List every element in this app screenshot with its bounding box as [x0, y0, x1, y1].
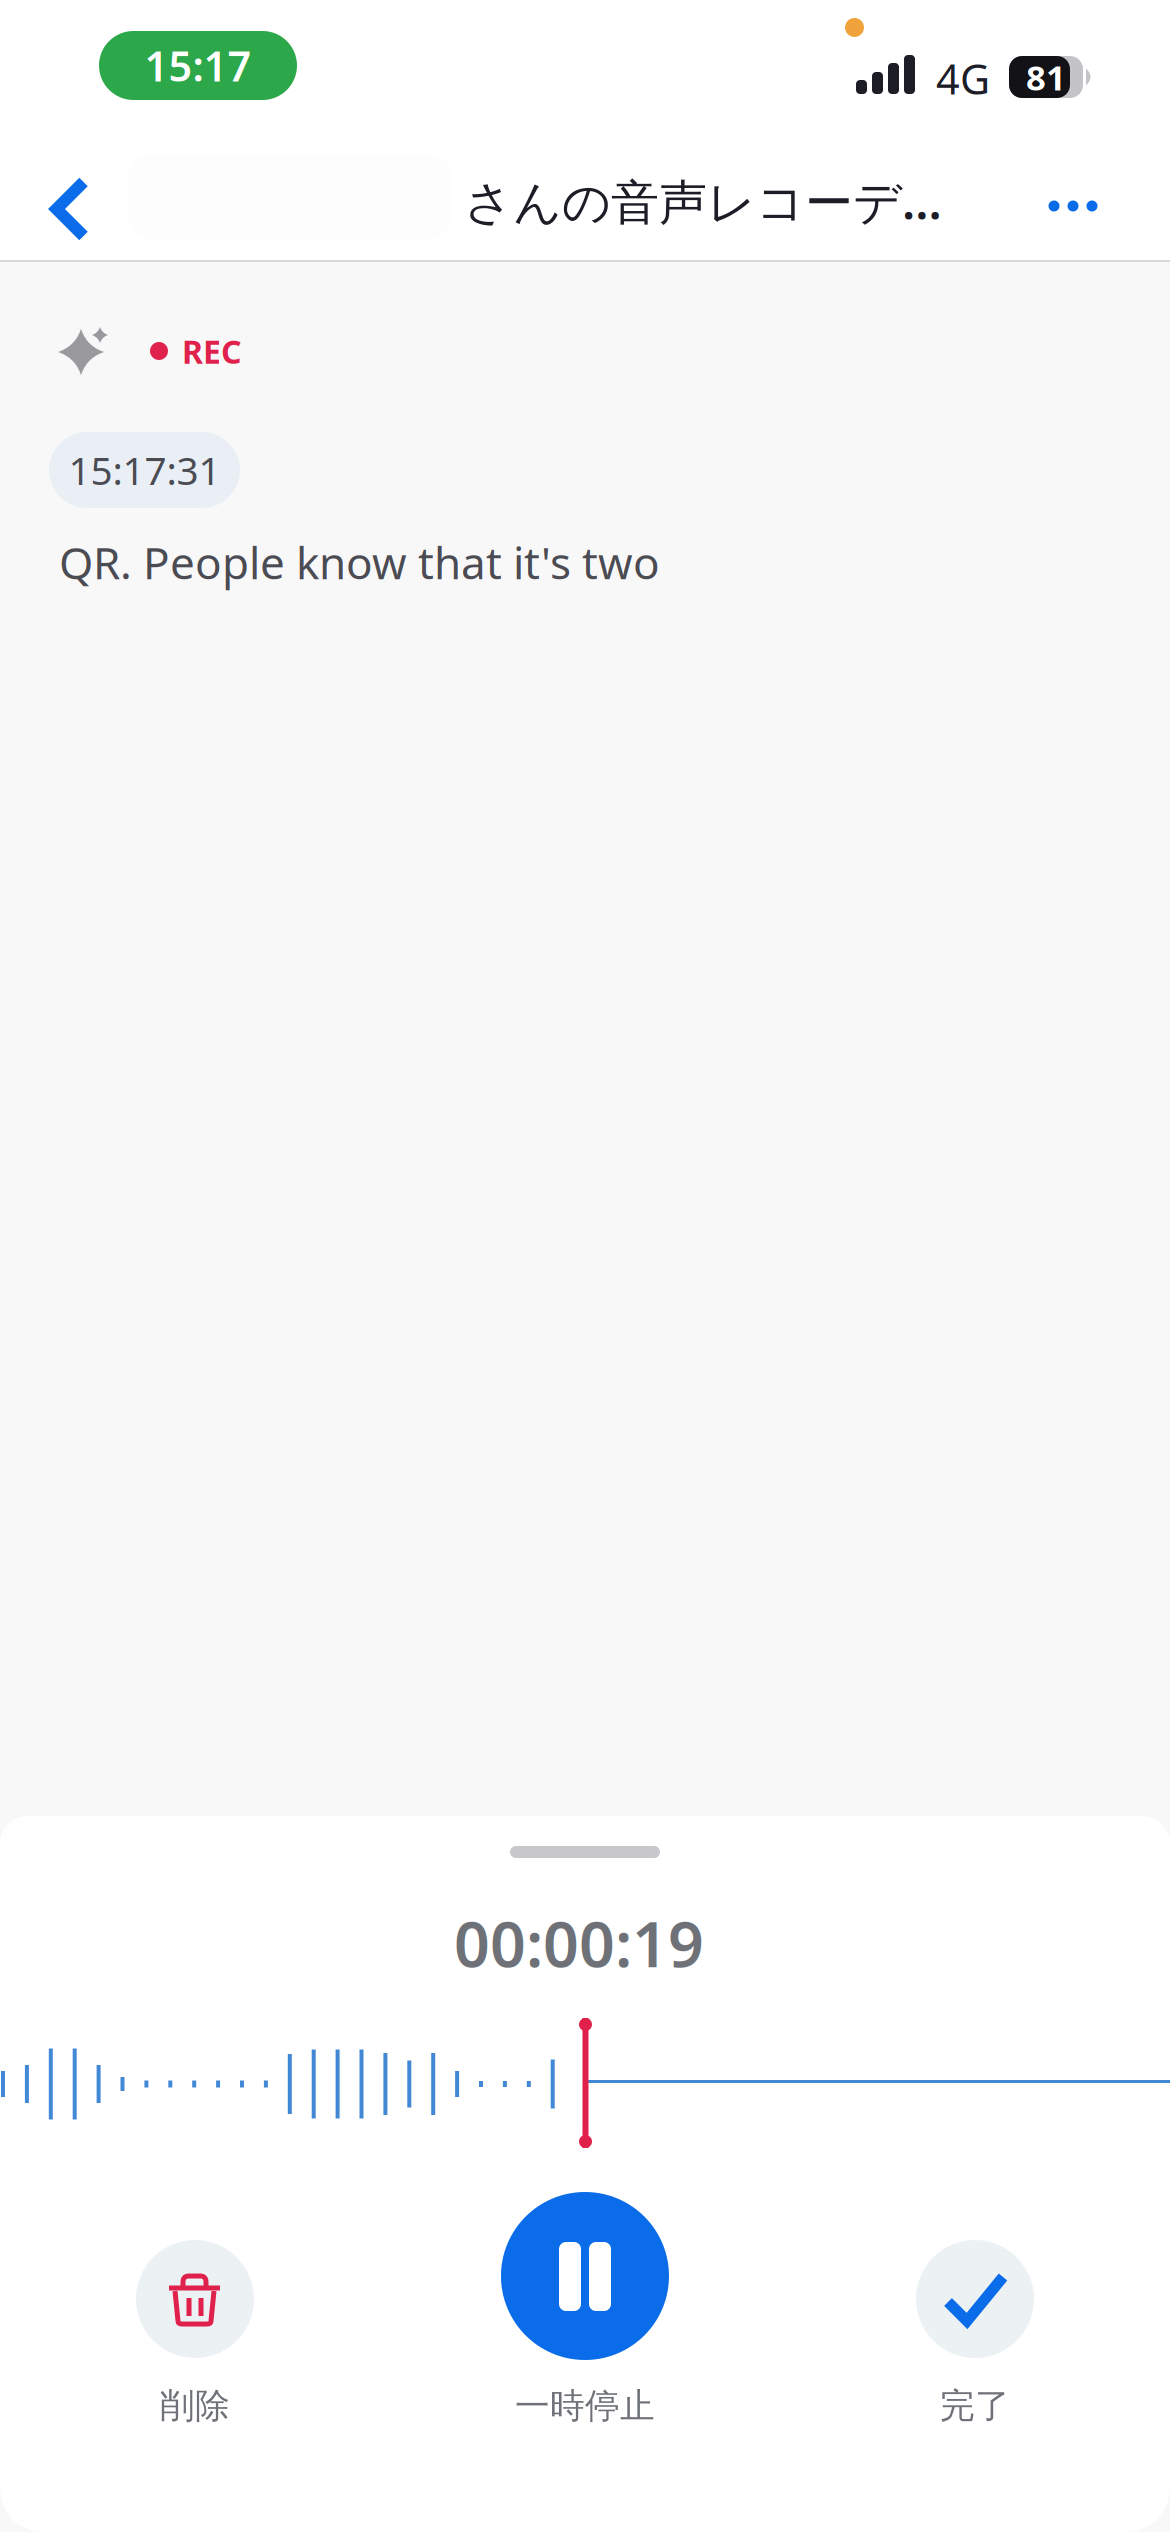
staticText: 00:00:19: [454, 1901, 704, 1985]
button[interactable]: Back: [15, 146, 125, 272]
staticText: 15:17: [144, 38, 251, 93]
staticText: 81: [1026, 54, 1066, 100]
button[interactable]: 削除: [0, 2240, 390, 2440]
staticText: REC: [182, 330, 242, 372]
button[interactable]: 一時停止: [390, 2192, 780, 2440]
staticText: 15:17:31: [68, 444, 220, 496]
staticText: 完了: [940, 2385, 1010, 2427]
staticText: QR. People know that it's two: [59, 533, 660, 591]
staticText: 削除: [160, 2385, 230, 2427]
button[interactable]: 完了: [780, 2240, 1170, 2440]
button[interactable]: More options: [1013, 143, 1133, 269]
staticText: 一時停止: [515, 2385, 655, 2427]
staticText: さんの音声レコーデ…: [464, 169, 942, 233]
staticText: 4G: [936, 51, 990, 106]
